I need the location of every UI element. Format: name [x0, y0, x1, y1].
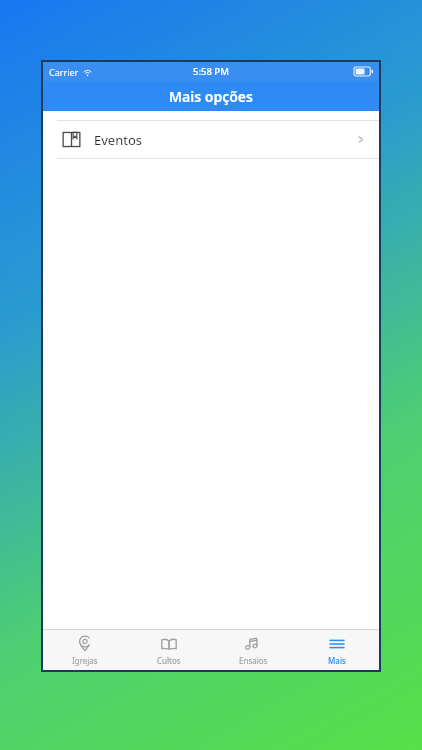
staticText: Eventos [94, 131, 142, 149]
staticText: 5:58 PM [193, 65, 229, 78]
button[interactable]: Eventos [43, 121, 379, 158]
staticText: Mais opções [169, 87, 253, 106]
staticText: Mais [328, 655, 346, 666]
button[interactable]: Ensaios [211, 630, 295, 670]
button[interactable]: Cultos [127, 630, 211, 670]
staticText: Cultos [157, 655, 181, 666]
button[interactable]: Igrejas [43, 630, 127, 670]
staticText: Igrejas [72, 655, 98, 666]
staticText: Ensaios [239, 655, 268, 666]
staticText: Carrier [49, 66, 79, 78]
button[interactable]: Mais [295, 630, 379, 670]
